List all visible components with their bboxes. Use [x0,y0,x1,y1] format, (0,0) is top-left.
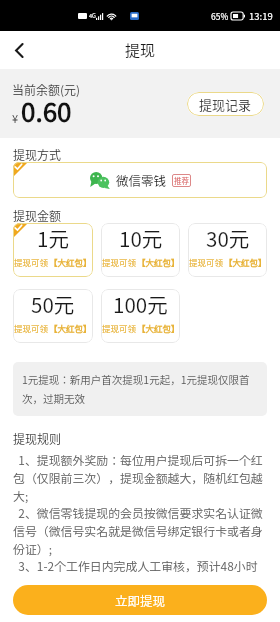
button[interactable]: 50元 [13,289,93,343]
staticText: 50元 [31,289,75,319]
staticText: 1元提现：新用户首次提现1元起，1元提现仅限首次，过期无效 [22,372,258,406]
staticText: 1元 [37,223,69,253]
staticText: 提现规则 [13,430,62,446]
staticText: 提现可领 [102,322,137,334]
staticText: 提现方式 [13,146,62,162]
button[interactable]: 30元 [188,223,267,277]
staticText: ¥ [12,110,19,126]
staticText: 1、提现额外奖励：每位用户提现后可拆一个红包（仅限前三次），提现金额越大，随机红… [13,451,267,504]
staticText: 13:19 [249,9,273,23]
staticText: 【大红包】 [137,256,180,268]
staticText: 当前余额(元) [12,81,81,98]
staticText: 提现可领 [14,322,49,334]
staticText: 30元 [206,223,250,253]
button[interactable]: 立即提现 [13,585,267,615]
staticText: 100元 [113,289,168,319]
button[interactable]: 100元 [101,289,180,343]
staticText: 【大红包】 [49,256,92,268]
staticText: 微信零钱 [116,171,167,189]
staticText: 【大红包】 [137,322,180,334]
staticText: 推荐 [174,175,189,186]
staticText: 提现可领 [14,256,49,268]
staticText: 4G [89,12,96,20]
staticText: 【大红包】 [49,322,92,334]
button[interactable]: Back [0,31,38,69]
staticText: 2、微信零钱提现的会员按微信要求实名认证微信号（微信号实名就是微信号绑定银行卡或… [13,504,267,557]
staticText: 提现可领 [189,256,224,268]
staticText: 0.60 [21,92,72,130]
staticText: 65% [211,10,229,22]
staticText: 立即提现 [115,591,166,609]
button[interactable]: 1元 [13,223,93,277]
staticText: 提现 [125,39,156,61]
staticText: 提现记录 [199,95,252,114]
staticText: 3、1-2个工作日内完成人工审核，预计48小时 [13,557,258,574]
staticText: 【大红包】 [224,256,267,268]
button[interactable]: 微信零钱 [13,162,267,198]
button[interactable]: 提现记录 [187,92,264,116]
staticText: 提现可领 [102,256,137,268]
staticText: 提现金额 [13,207,62,223]
staticText: 10元 [119,223,163,253]
button[interactable]: 10元 [101,223,180,277]
